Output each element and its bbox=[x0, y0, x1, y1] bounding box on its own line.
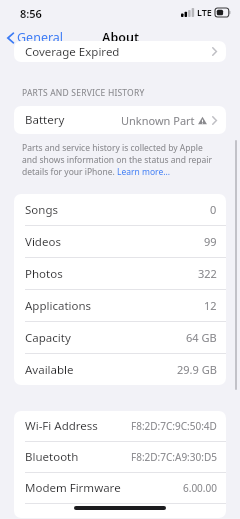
staticText: 322 bbox=[198, 266, 217, 281]
staticText: 0 bbox=[210, 202, 217, 217]
staticText: 6.00.00 bbox=[183, 481, 217, 495]
staticText: Videos bbox=[25, 234, 61, 250]
staticText: Photos bbox=[25, 266, 63, 282]
staticText: Capacity bbox=[25, 330, 71, 346]
button[interactable]: General bbox=[0, 27, 70, 48]
staticText: Unknown Part bbox=[121, 113, 195, 128]
button[interactable]: Wi-Fi Address bbox=[14, 411, 226, 441]
button[interactable]: Applications bbox=[14, 290, 226, 321]
button[interactable]: Coverage Expired bbox=[14, 41, 226, 62]
button[interactable]: Bluetooth bbox=[14, 442, 226, 472]
staticText: Coverage Expired bbox=[25, 44, 120, 60]
staticText: Wi-Fi Address bbox=[25, 418, 98, 434]
button[interactable]: Battery bbox=[14, 106, 226, 134]
staticText: Songs bbox=[25, 202, 58, 218]
staticText: Battery bbox=[25, 112, 65, 128]
staticText: Applications bbox=[25, 298, 92, 314]
staticText: Available bbox=[25, 362, 74, 378]
staticText: 8:56 bbox=[20, 6, 42, 21]
button[interactable]: Capacity bbox=[14, 322, 226, 353]
button[interactable]: Photos bbox=[14, 258, 226, 289]
staticText: 99 bbox=[204, 234, 217, 249]
staticText: LTE bbox=[197, 6, 212, 18]
staticText: General bbox=[17, 29, 64, 46]
button[interactable]: Videos bbox=[14, 226, 226, 257]
button[interactable]: Modem Firmware bbox=[14, 473, 226, 503]
staticText: Modem Firmware bbox=[25, 480, 121, 496]
staticText: PARTS AND SERVICE HISTORY bbox=[22, 87, 145, 99]
staticText: F8:2D:7C:9C:50:4D bbox=[131, 419, 217, 433]
staticText: 12 bbox=[204, 298, 217, 313]
staticText: Bluetooth bbox=[25, 449, 79, 465]
staticText: F8:2D:7C:A9:30:D5 bbox=[131, 450, 217, 464]
button[interactable]: Songs bbox=[14, 194, 226, 225]
staticText: 64 GB bbox=[186, 330, 217, 345]
staticText: Parts and service history is collected b… bbox=[22, 142, 220, 178]
staticText: 29.9 GB bbox=[177, 362, 217, 377]
staticText: About bbox=[102, 29, 139, 46]
button[interactable]: Available bbox=[14, 354, 226, 385]
